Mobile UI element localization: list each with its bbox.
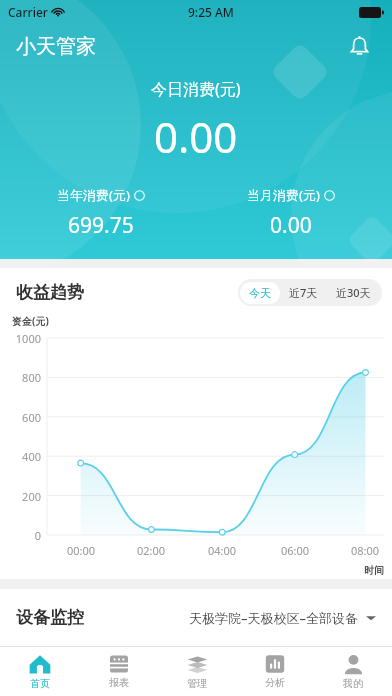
- staticText: 首页: [30, 677, 50, 690]
- staticText: 02:00: [133, 543, 169, 558]
- button[interactable]: 近7天: [280, 281, 327, 304]
- button[interactable]: 报表: [79, 647, 158, 696]
- staticText: 近30天: [336, 285, 371, 300]
- staticText: 04:00: [204, 543, 240, 558]
- button[interactable]: 设备监控: [0, 589, 392, 646]
- button[interactable]: 分析: [236, 647, 314, 696]
- staticText: 0: [0, 528, 41, 543]
- staticText: 当月消费(元): [247, 186, 320, 204]
- staticText: 0.00: [270, 211, 312, 240]
- staticText: 9:25 AM: [188, 4, 234, 20]
- staticText: 今日消费(元): [151, 78, 241, 100]
- staticText: 设备监控: [16, 607, 84, 628]
- button[interactable]: 今天: [240, 282, 280, 304]
- button[interactable]: 近30天: [327, 281, 380, 304]
- staticText: 时间: [364, 564, 384, 577]
- staticText: 小天管家: [16, 34, 96, 59]
- button[interactable]: Notifications: [342, 29, 376, 63]
- staticText: 资金(元): [12, 314, 49, 328]
- button[interactable]: 首页: [0, 647, 79, 696]
- staticText: 管理: [187, 677, 207, 690]
- staticText: 0.00: [154, 108, 238, 165]
- staticText: 天极学院–天极校区–全部设备: [189, 609, 358, 627]
- staticText: 收益趋势: [16, 282, 84, 303]
- staticText: 近7天: [289, 285, 318, 300]
- staticText: 699.75: [68, 211, 134, 240]
- staticText: 400: [0, 449, 41, 464]
- staticText: 06:00: [277, 543, 313, 558]
- button[interactable]: 管理: [158, 647, 236, 696]
- staticText: 00:00: [63, 543, 99, 558]
- staticText: 今天: [249, 286, 271, 300]
- staticText: 200: [0, 489, 41, 504]
- button[interactable]: 我的: [314, 647, 392, 696]
- staticText: 当年消费(元): [57, 186, 130, 204]
- staticText: 1000: [0, 331, 41, 346]
- staticText: 08:00: [347, 543, 383, 558]
- staticText: 800: [0, 370, 41, 385]
- staticText: 我的: [343, 677, 363, 690]
- staticText: 报表: [109, 676, 129, 689]
- staticText: Carrier: [8, 4, 48, 20]
- staticText: 600: [0, 410, 41, 425]
- staticText: 分析: [265, 676, 285, 689]
